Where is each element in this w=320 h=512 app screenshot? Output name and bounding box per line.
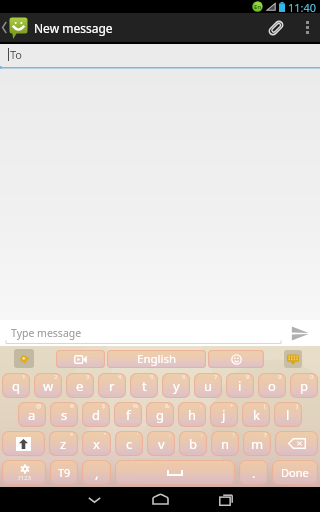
- button[interactable]: n: [211, 431, 239, 456]
- staticText: :: [169, 431, 171, 439]
- staticText: a: [28, 406, 36, 424]
- staticText: .: [252, 464, 256, 482]
- button[interactable]: x: [82, 431, 111, 456]
- staticText: 11:40: [288, 0, 317, 13]
- staticText: ): [296, 402, 298, 410]
- button[interactable]: .: [239, 460, 268, 485]
- button[interactable]: p: [290, 373, 318, 398]
- button[interactable]: h: [178, 402, 206, 427]
- button[interactable]: e: [66, 373, 94, 398]
- staticText: g: [156, 406, 164, 424]
- staticText: Done: [281, 465, 309, 480]
- staticText: -: [200, 402, 202, 410]
- button[interactable]: c: [115, 431, 143, 456]
- staticText: i: [238, 377, 242, 395]
- staticText: 0: [310, 373, 314, 381]
- button[interactable]: Recent apps: [193, 487, 259, 512]
- staticText: f: [126, 406, 131, 424]
- staticText: @: [36, 402, 42, 410]
- button[interactable]: Emoji: [208, 350, 264, 368]
- staticText: l: [286, 406, 290, 424]
- button[interactable]: w: [34, 373, 62, 398]
- button[interactable]: l: [274, 402, 302, 427]
- staticText: 9: [278, 373, 282, 381]
- button[interactable]: t: [130, 373, 158, 398]
- staticText: New message: [34, 20, 113, 36]
- button[interactable]: z: [49, 431, 78, 456]
- staticText: v: [158, 435, 165, 453]
- button[interactable]: Shift: [2, 431, 45, 456]
- staticText: *: [70, 431, 74, 439]
- button[interactable]: Done: [272, 460, 318, 485]
- staticText: #: [70, 402, 74, 410]
- staticText: s: [61, 406, 68, 424]
- staticText: T9: [58, 465, 71, 480]
- button[interactable]: Attach: [258, 13, 294, 42]
- button[interactable]: ,: [82, 460, 111, 485]
- button[interactable]: To: [0, 44, 320, 70]
- staticText: +: [230, 402, 234, 410]
- button[interactable]: r: [98, 373, 126, 398]
- button[interactable]: u: [194, 373, 222, 398]
- button[interactable]: Symbols: [2, 460, 46, 485]
- button[interactable]: o: [258, 373, 286, 398]
- staticText: English: [137, 351, 177, 367]
- button[interactable]: d: [82, 402, 110, 427]
- button[interactable]: j: [210, 402, 238, 427]
- staticText: t: [142, 377, 147, 395]
- button[interactable]: f: [114, 402, 142, 427]
- staticText: ': [137, 431, 139, 439]
- button[interactable]: Home: [127, 487, 193, 512]
- staticText: j: [222, 406, 226, 424]
- staticText: &: [165, 402, 170, 410]
- button[interactable]: m: [243, 431, 271, 456]
- staticText: e: [76, 377, 84, 395]
- staticText: x: [93, 435, 100, 453]
- staticText: 3: [86, 373, 90, 381]
- button[interactable]: T9: [50, 460, 78, 485]
- button[interactable]: Theme settings: [14, 349, 34, 368]
- staticText: 8: [246, 373, 250, 381]
- staticText: w: [43, 377, 54, 395]
- staticText: To: [10, 47, 23, 62]
- button[interactable]: g: [146, 402, 174, 427]
- button[interactable]: Space: [115, 460, 235, 485]
- button[interactable]: k: [242, 402, 270, 427]
- staticText: 4: [118, 373, 122, 381]
- staticText: h: [188, 406, 197, 424]
- button[interactable]: Send: [280, 320, 320, 346]
- staticText: ;: [201, 431, 203, 439]
- button[interactable]: New message: [0, 13, 113, 42]
- button[interactable]: Delete: [275, 431, 318, 456]
- staticText: u: [204, 377, 213, 395]
- staticText: r: [109, 377, 115, 395]
- button[interactable]: b: [179, 431, 207, 456]
- staticText: !: [233, 431, 235, 439]
- button[interactable]: i: [226, 373, 254, 398]
- button[interactable]: Voice input: [56, 350, 105, 368]
- button[interactable]: a: [18, 402, 46, 427]
- button[interactable]: English: [107, 350, 206, 368]
- staticText: 1: [22, 373, 26, 381]
- button[interactable]: v: [147, 431, 175, 456]
- staticText: 2: [54, 373, 58, 381]
- staticText: %: [133, 402, 138, 410]
- staticText: ,: [95, 464, 99, 482]
- staticText: y: [173, 377, 180, 395]
- staticText: z: [60, 435, 67, 453]
- staticText: En: [254, 3, 262, 11]
- staticText: 6: [182, 373, 186, 381]
- staticText: p: [300, 377, 308, 395]
- staticText: ": [104, 431, 107, 439]
- button[interactable]: s: [50, 402, 78, 427]
- staticText: o: [268, 377, 276, 395]
- button[interactable]: y: [162, 373, 190, 398]
- staticText: 7: [214, 373, 218, 381]
- staticText: q: [12, 377, 20, 395]
- staticText: d: [92, 406, 100, 424]
- button[interactable]: Switch keyboard: [284, 350, 302, 368]
- button[interactable]: q: [2, 373, 30, 398]
- button[interactable]: More options: [294, 13, 320, 42]
- staticText: ?123: [18, 474, 31, 482]
- button[interactable]: Hide keyboard: [61, 487, 127, 512]
